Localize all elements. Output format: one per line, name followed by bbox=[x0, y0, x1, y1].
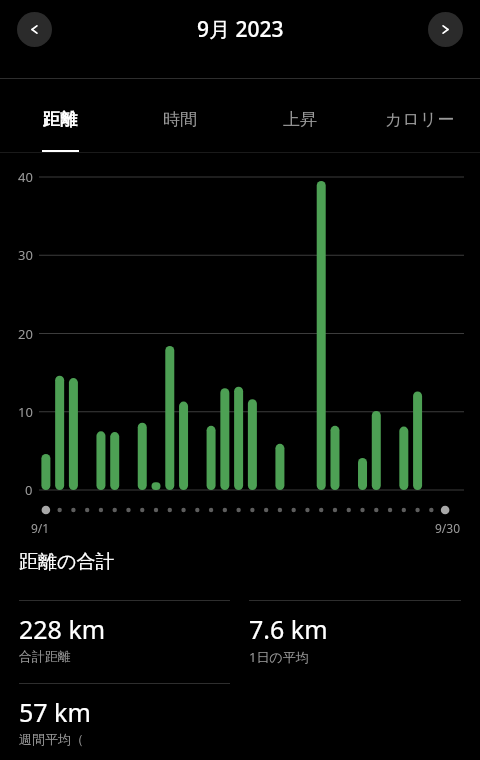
staticText: 距離 bbox=[43, 109, 77, 130]
button[interactable]: 上昇 bbox=[240, 79, 360, 153]
staticText: 週間平均（ bbox=[19, 731, 84, 747]
staticText: 時間 bbox=[163, 109, 197, 130]
staticText: 20 bbox=[18, 325, 33, 343]
staticText: 9/30 bbox=[435, 520, 461, 536]
staticText: 57 km bbox=[19, 695, 91, 729]
button[interactable]: 7.6 km bbox=[249, 600, 461, 666]
staticText: 0 bbox=[25, 481, 33, 499]
staticText: 30 bbox=[18, 246, 33, 264]
button[interactable]: Previous month bbox=[17, 12, 52, 47]
staticText: カロリー bbox=[385, 109, 455, 130]
staticText: 距離の合計 bbox=[19, 550, 115, 574]
button[interactable]: カロリー bbox=[360, 79, 480, 153]
button[interactable]: 時間 bbox=[120, 79, 240, 153]
button[interactable]: 228 km bbox=[19, 600, 230, 664]
button[interactable]: 57 km bbox=[19, 683, 230, 747]
staticText: 9/1 bbox=[31, 520, 50, 536]
staticText: 7.6 km bbox=[249, 612, 328, 646]
staticText: 上昇 bbox=[283, 109, 317, 130]
staticText: 40 bbox=[18, 168, 33, 186]
staticText: 1日の平均 bbox=[249, 648, 309, 666]
staticText: 合計距離 bbox=[19, 648, 71, 664]
staticText: 9月 2023 bbox=[197, 15, 284, 44]
button[interactable]: Next month bbox=[428, 12, 463, 47]
staticText: 10 bbox=[18, 403, 33, 421]
staticText: 228 km bbox=[19, 612, 106, 646]
button[interactable]: 距離 bbox=[0, 79, 120, 153]
